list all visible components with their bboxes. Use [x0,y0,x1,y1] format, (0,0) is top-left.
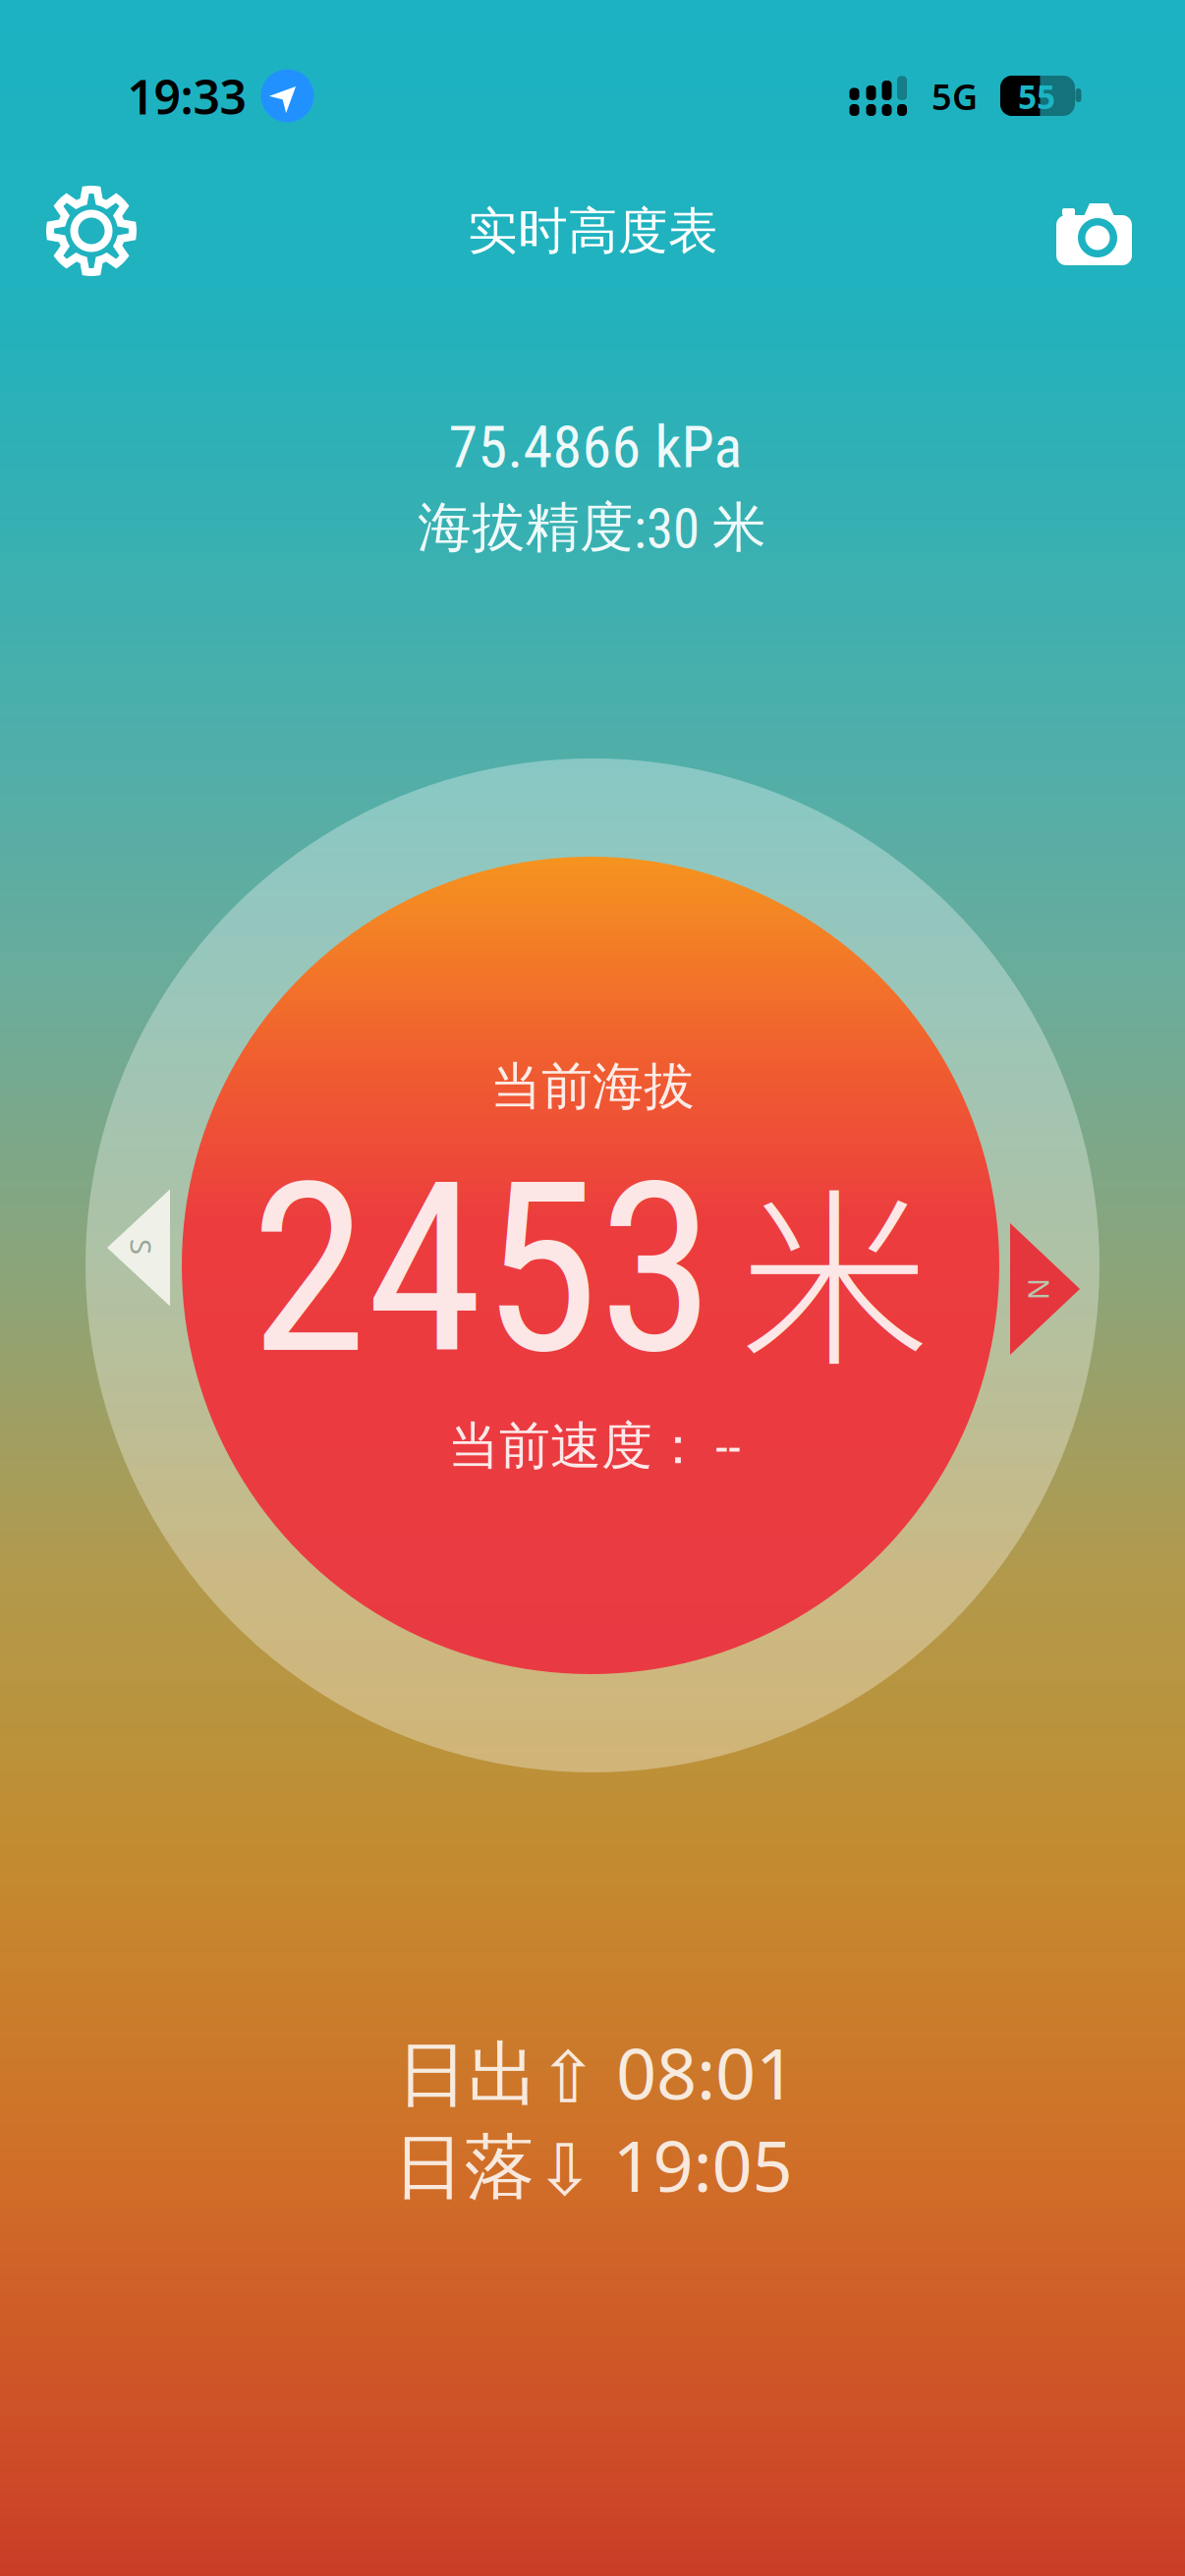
staticText: S [134,1228,149,1266]
staticText: 19:33 [127,65,246,128]
staticText: 5G [931,73,978,120]
staticText: 当前速度： -- [448,1414,741,1478]
staticText: 75.4866 kPa [449,412,742,482]
staticText: 当前海拔 [490,1054,695,1119]
staticText: 2453 [251,1131,714,1407]
staticText: 海拔精度:30 米 [418,494,766,561]
staticText: N [1029,1270,1050,1308]
staticText: 实时高度表 [468,201,718,262]
staticText: 日落⇩ 19:05 [394,2117,792,2211]
staticText: 日出⇧ 08:01 [397,2025,796,2119]
staticText: 55 [1018,75,1055,118]
staticText: 米 [739,1128,931,1405]
button[interactable]: Settings [49,189,134,273]
button[interactable]: Camera [1048,192,1140,265]
